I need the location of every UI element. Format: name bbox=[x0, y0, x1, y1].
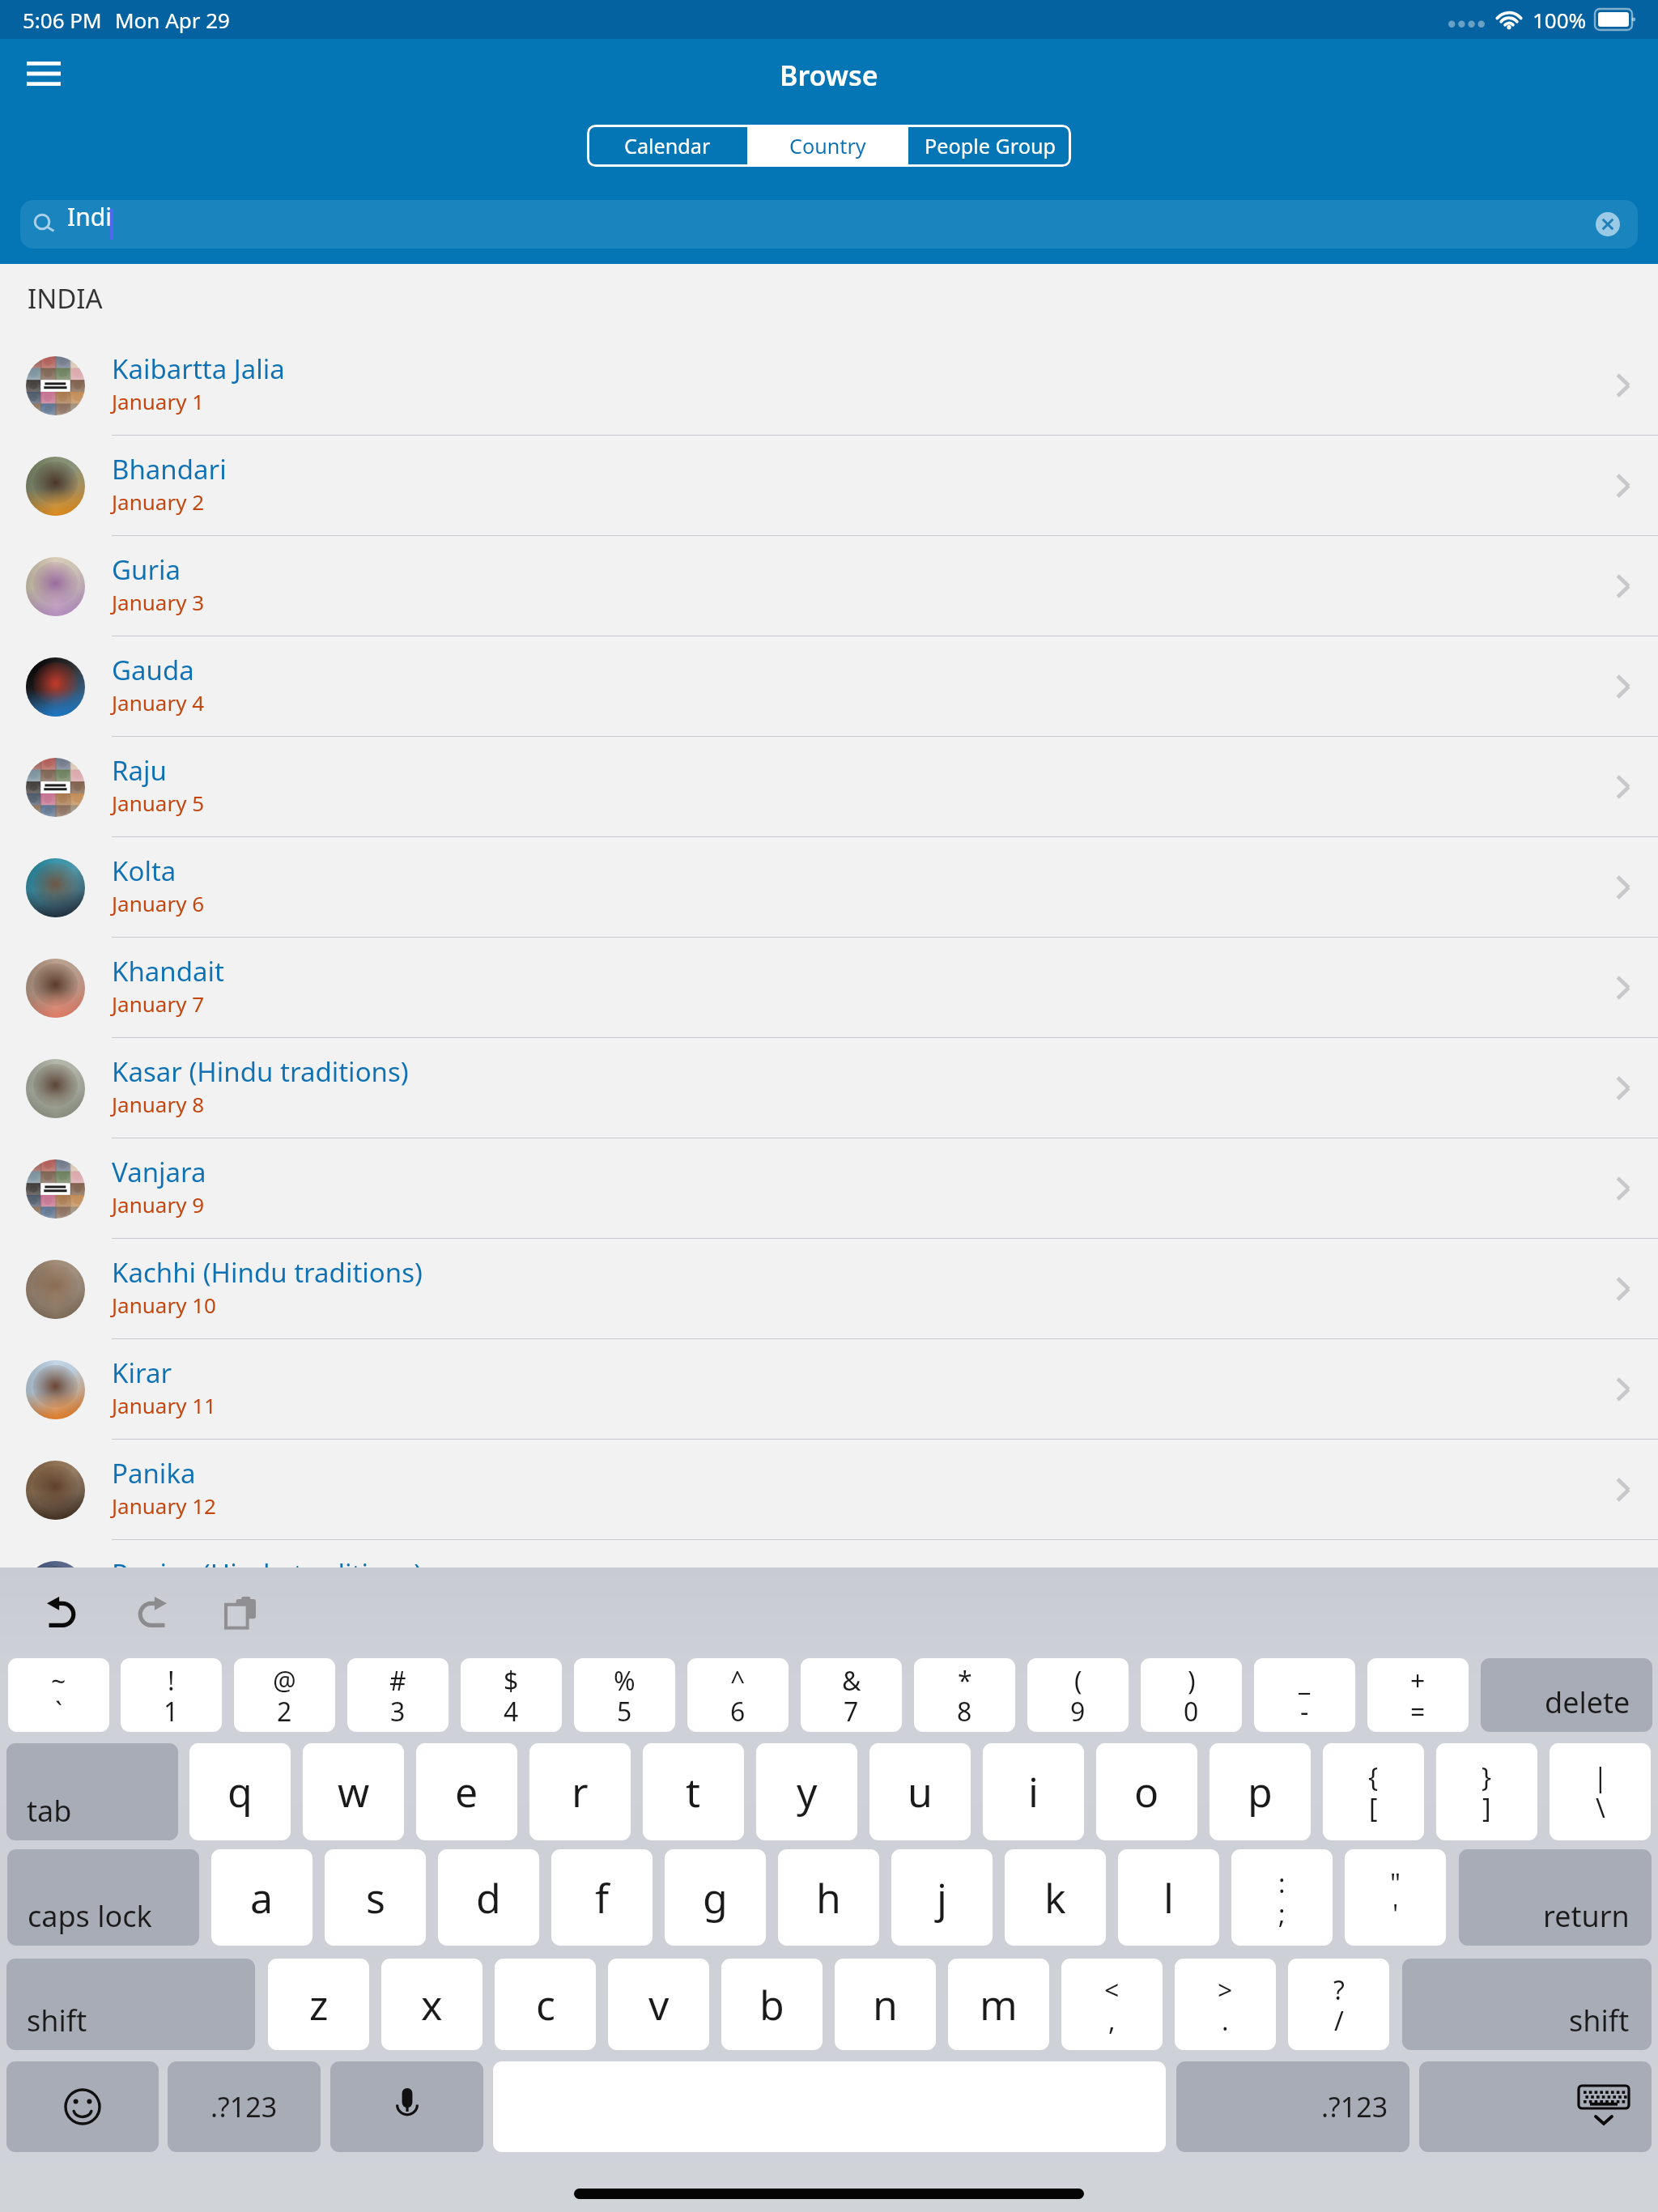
button[interactable]: > bbox=[1175, 1959, 1276, 2050]
button[interactable]: ) bbox=[1141, 1658, 1242, 1732]
button[interactable]: g bbox=[665, 1849, 766, 1946]
staticText: 6 bbox=[730, 1694, 746, 1729]
button[interactable]: x bbox=[381, 1959, 483, 2050]
button[interactable]: p bbox=[1209, 1743, 1311, 1840]
button[interactable]: Undo bbox=[27, 1575, 101, 1649]
staticText: Mon Apr 29 bbox=[115, 6, 230, 34]
button[interactable]: Khandait bbox=[0, 938, 1658, 1038]
button[interactable]: % bbox=[574, 1658, 675, 1732]
button[interactable]: Redo bbox=[113, 1575, 187, 1649]
button[interactable]: Indi bbox=[20, 200, 1638, 249]
button[interactable]: q bbox=[189, 1743, 291, 1840]
button[interactable]: d bbox=[438, 1849, 539, 1946]
staticText: o bbox=[1134, 1764, 1159, 1819]
staticText: 100% bbox=[1533, 6, 1587, 34]
button[interactable]: Guria bbox=[0, 536, 1658, 636]
button[interactable]: Bhandari bbox=[0, 436, 1658, 536]
button[interactable]: return bbox=[1459, 1849, 1652, 1946]
button[interactable]: s bbox=[325, 1849, 426, 1946]
button[interactable] bbox=[1419, 2061, 1652, 2152]
button[interactable]: Kaibartta Jalia bbox=[0, 335, 1658, 436]
button[interactable]: + bbox=[1367, 1658, 1469, 1732]
button[interactable]: k bbox=[1005, 1849, 1106, 1946]
button[interactable]: i bbox=[983, 1743, 1084, 1840]
button[interactable] bbox=[330, 2061, 483, 2152]
button[interactable]: ? bbox=[1288, 1959, 1389, 2050]
button[interactable]: .?123 bbox=[168, 2061, 321, 2152]
staticText: h bbox=[816, 1870, 841, 1925]
staticText: { bbox=[1368, 1759, 1379, 1795]
button[interactable]: v bbox=[608, 1959, 709, 2050]
staticText: w bbox=[338, 1764, 370, 1819]
button[interactable]: " bbox=[1345, 1849, 1446, 1946]
button[interactable]: ^ bbox=[687, 1658, 789, 1732]
button[interactable]: ~ bbox=[8, 1658, 109, 1732]
button[interactable]: Calendar bbox=[587, 125, 747, 167]
button[interactable]: Kirar bbox=[0, 1339, 1658, 1440]
button[interactable]: n bbox=[835, 1959, 936, 2050]
button[interactable]: f bbox=[551, 1849, 653, 1946]
button[interactable]: } bbox=[1436, 1743, 1537, 1840]
button[interactable]: delete bbox=[1481, 1658, 1652, 1732]
button[interactable]: caps lock bbox=[7, 1849, 199, 1946]
button[interactable]: o bbox=[1096, 1743, 1197, 1840]
button[interactable]: _ bbox=[1254, 1658, 1355, 1732]
button[interactable]: Vanjara bbox=[0, 1138, 1658, 1239]
button[interactable]: Space bbox=[493, 2061, 1166, 2152]
button[interactable]: Paste bbox=[203, 1575, 278, 1649]
button[interactable]: ( bbox=[1027, 1658, 1129, 1732]
button[interactable]: Kolta bbox=[0, 837, 1658, 938]
button[interactable]: $ bbox=[461, 1658, 562, 1732]
button[interactable]: @ bbox=[234, 1658, 335, 1732]
staticText: Indi bbox=[67, 200, 112, 233]
button[interactable]: r bbox=[529, 1743, 631, 1840]
staticText: 5:06 PM bbox=[23, 6, 102, 34]
button[interactable]: l bbox=[1118, 1849, 1219, 1946]
staticText: - bbox=[1300, 1694, 1309, 1729]
button[interactable]: Gauda bbox=[0, 636, 1658, 737]
staticText: p bbox=[1248, 1764, 1273, 1819]
button[interactable]: e bbox=[416, 1743, 517, 1840]
button[interactable]: h bbox=[778, 1849, 879, 1946]
button[interactable]: tab bbox=[6, 1743, 178, 1840]
button[interactable]: Kasar (Hindu traditions) bbox=[0, 1038, 1658, 1138]
button[interactable]: Raniya (Hindu traditions) bbox=[0, 1540, 1658, 1568]
button[interactable]: # bbox=[347, 1658, 449, 1732]
button[interactable]: y bbox=[756, 1743, 857, 1840]
button[interactable]: a bbox=[211, 1849, 312, 1946]
staticText: i bbox=[1028, 1764, 1039, 1819]
button[interactable]: c bbox=[495, 1959, 596, 2050]
staticText: January 9 bbox=[112, 1190, 205, 1219]
button[interactable]: & bbox=[801, 1658, 902, 1732]
staticText: caps lock bbox=[28, 1896, 152, 1936]
button[interactable] bbox=[6, 2061, 159, 2152]
button[interactable]: | bbox=[1550, 1743, 1651, 1840]
button[interactable]: b bbox=[721, 1959, 823, 2050]
staticText: 7 bbox=[844, 1694, 859, 1729]
button[interactable]: t bbox=[643, 1743, 744, 1840]
button[interactable]: Clear search bbox=[1590, 206, 1626, 242]
button[interactable]: z bbox=[268, 1959, 369, 2050]
button[interactable]: Panika bbox=[0, 1440, 1658, 1540]
button[interactable]: j bbox=[891, 1849, 993, 1946]
button[interactable]: < bbox=[1061, 1959, 1163, 2050]
button[interactable]: Kachhi (Hindu traditions) bbox=[0, 1239, 1658, 1339]
button[interactable]: { bbox=[1323, 1743, 1424, 1840]
button[interactable]: * bbox=[914, 1658, 1015, 1732]
button[interactable]: shift bbox=[1402, 1959, 1652, 2050]
button[interactable]: u bbox=[869, 1743, 971, 1840]
button[interactable]: Country bbox=[747, 125, 908, 167]
button[interactable]: ! bbox=[121, 1658, 222, 1732]
staticText: INDIA bbox=[28, 280, 103, 317]
button[interactable]: People Group bbox=[908, 125, 1071, 167]
button[interactable]: Raju bbox=[0, 737, 1658, 837]
button[interactable]: .?123 bbox=[1176, 2061, 1409, 2152]
staticText: r bbox=[572, 1764, 589, 1819]
button[interactable]: Menu bbox=[10, 40, 78, 108]
button[interactable]: w bbox=[303, 1743, 404, 1840]
button[interactable]: shift bbox=[6, 1959, 255, 2050]
button[interactable]: m bbox=[948, 1959, 1049, 2050]
staticText: Kolta bbox=[112, 853, 176, 889]
button[interactable]: : bbox=[1231, 1849, 1333, 1946]
staticText: ] bbox=[1482, 1790, 1491, 1826]
